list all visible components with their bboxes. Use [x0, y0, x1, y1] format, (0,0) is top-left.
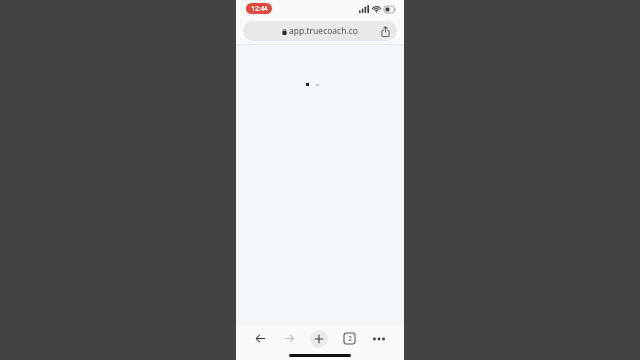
staticText: 2	[348, 334, 352, 343]
button[interactable]: More	[364, 326, 394, 351]
button[interactable]: New tab	[304, 326, 334, 351]
button[interactable]: Share	[377, 23, 393, 39]
staticText: 12:44	[251, 4, 268, 13]
button[interactable]: Back	[246, 326, 275, 351]
button[interactable]: app.truecoach.co	[243, 21, 397, 41]
button[interactable]: Forward	[275, 326, 304, 351]
staticText: app.truecoach.co	[289, 25, 358, 37]
button[interactable]: Tabs	[334, 326, 364, 351]
